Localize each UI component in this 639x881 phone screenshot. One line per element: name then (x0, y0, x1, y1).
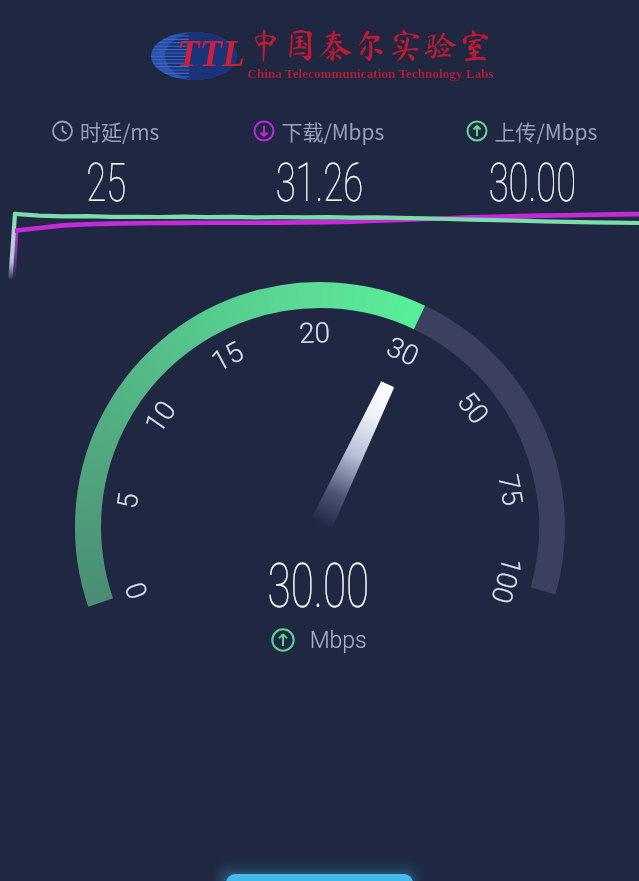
button[interactable]: Download 31.26 Mbps (253, 112, 386, 208)
button[interactable]: Start test (226, 874, 413, 881)
button[interactable]: Upload speed 30.00 Mbps (80, 280, 560, 660)
button[interactable]: Upload 30.00 Mbps (466, 112, 599, 208)
button[interactable]: Latency 25 ms (40, 112, 173, 208)
